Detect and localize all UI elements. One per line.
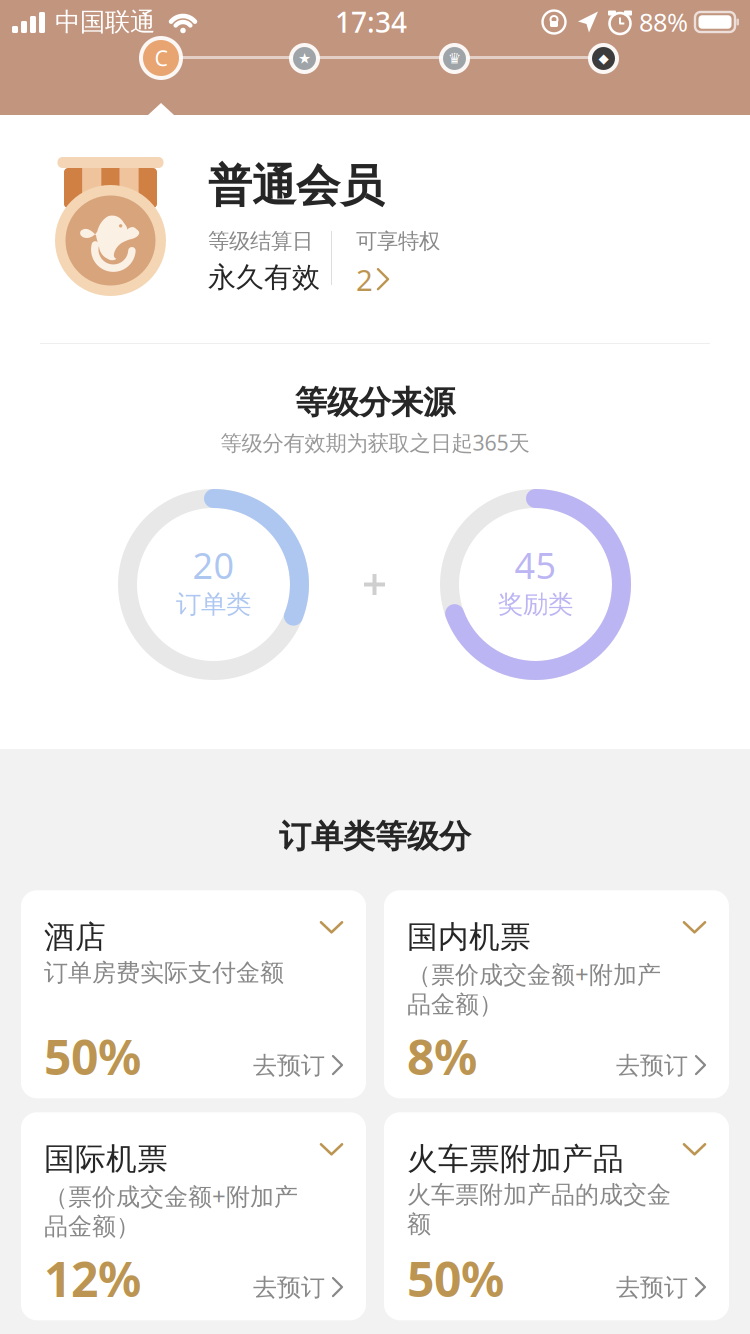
button[interactable]: 国际机票 bbox=[21, 1112, 366, 1320]
staticText: 国内机票 bbox=[407, 918, 531, 956]
staticText: 可享特权 bbox=[356, 228, 440, 254]
staticText: 50% bbox=[407, 1247, 504, 1310]
staticText: C bbox=[154, 44, 167, 72]
staticText: 订单房费实际支付金额 bbox=[44, 958, 284, 987]
staticText: （票价成交金额+附加产品金额） bbox=[44, 1180, 298, 1241]
staticText: 中国联通 bbox=[55, 6, 155, 37]
button[interactable]: 火车票附加产品 bbox=[384, 1112, 729, 1320]
staticText: 88% bbox=[639, 5, 688, 39]
staticText: 去预订 bbox=[616, 1273, 688, 1302]
staticText: 永久有效 bbox=[208, 260, 320, 295]
staticText: ★ bbox=[298, 50, 311, 67]
staticText: （票价成交金额+附加产品金额） bbox=[407, 958, 661, 1019]
staticText: 订单类等级分 bbox=[279, 817, 471, 856]
staticText: ♛ bbox=[448, 50, 461, 67]
staticText: ◆ bbox=[598, 51, 608, 66]
staticText: 等级分有效期为获取之日起365天 bbox=[220, 428, 529, 457]
staticText: 2 bbox=[356, 260, 373, 299]
staticText: 奖励类 bbox=[498, 589, 573, 620]
staticText: 50% bbox=[44, 1025, 141, 1088]
staticText: 火车票附加产品的成交金额 bbox=[407, 1180, 671, 1239]
staticText: 普通会员 bbox=[208, 159, 384, 213]
staticText: 去预订 bbox=[616, 1051, 688, 1080]
staticText: 12% bbox=[44, 1247, 141, 1310]
staticText: 火车票附加产品 bbox=[407, 1140, 624, 1178]
staticText: 17:34 bbox=[335, 3, 407, 41]
staticText: 等级结算日 bbox=[208, 228, 313, 254]
staticText: 去预订 bbox=[253, 1051, 325, 1080]
staticText: 等级分来源 bbox=[295, 383, 455, 422]
staticText: 去预订 bbox=[253, 1273, 325, 1302]
staticText: 国际机票 bbox=[44, 1140, 168, 1178]
button[interactable]: 国内机票 bbox=[384, 890, 729, 1098]
staticText: 45 bbox=[514, 541, 556, 589]
staticText: 8% bbox=[407, 1025, 477, 1088]
staticText: 20 bbox=[192, 541, 234, 589]
button[interactable]: 酒店 bbox=[21, 890, 366, 1098]
staticText: 订单类 bbox=[176, 589, 251, 620]
staticText: 酒店 bbox=[44, 918, 106, 956]
